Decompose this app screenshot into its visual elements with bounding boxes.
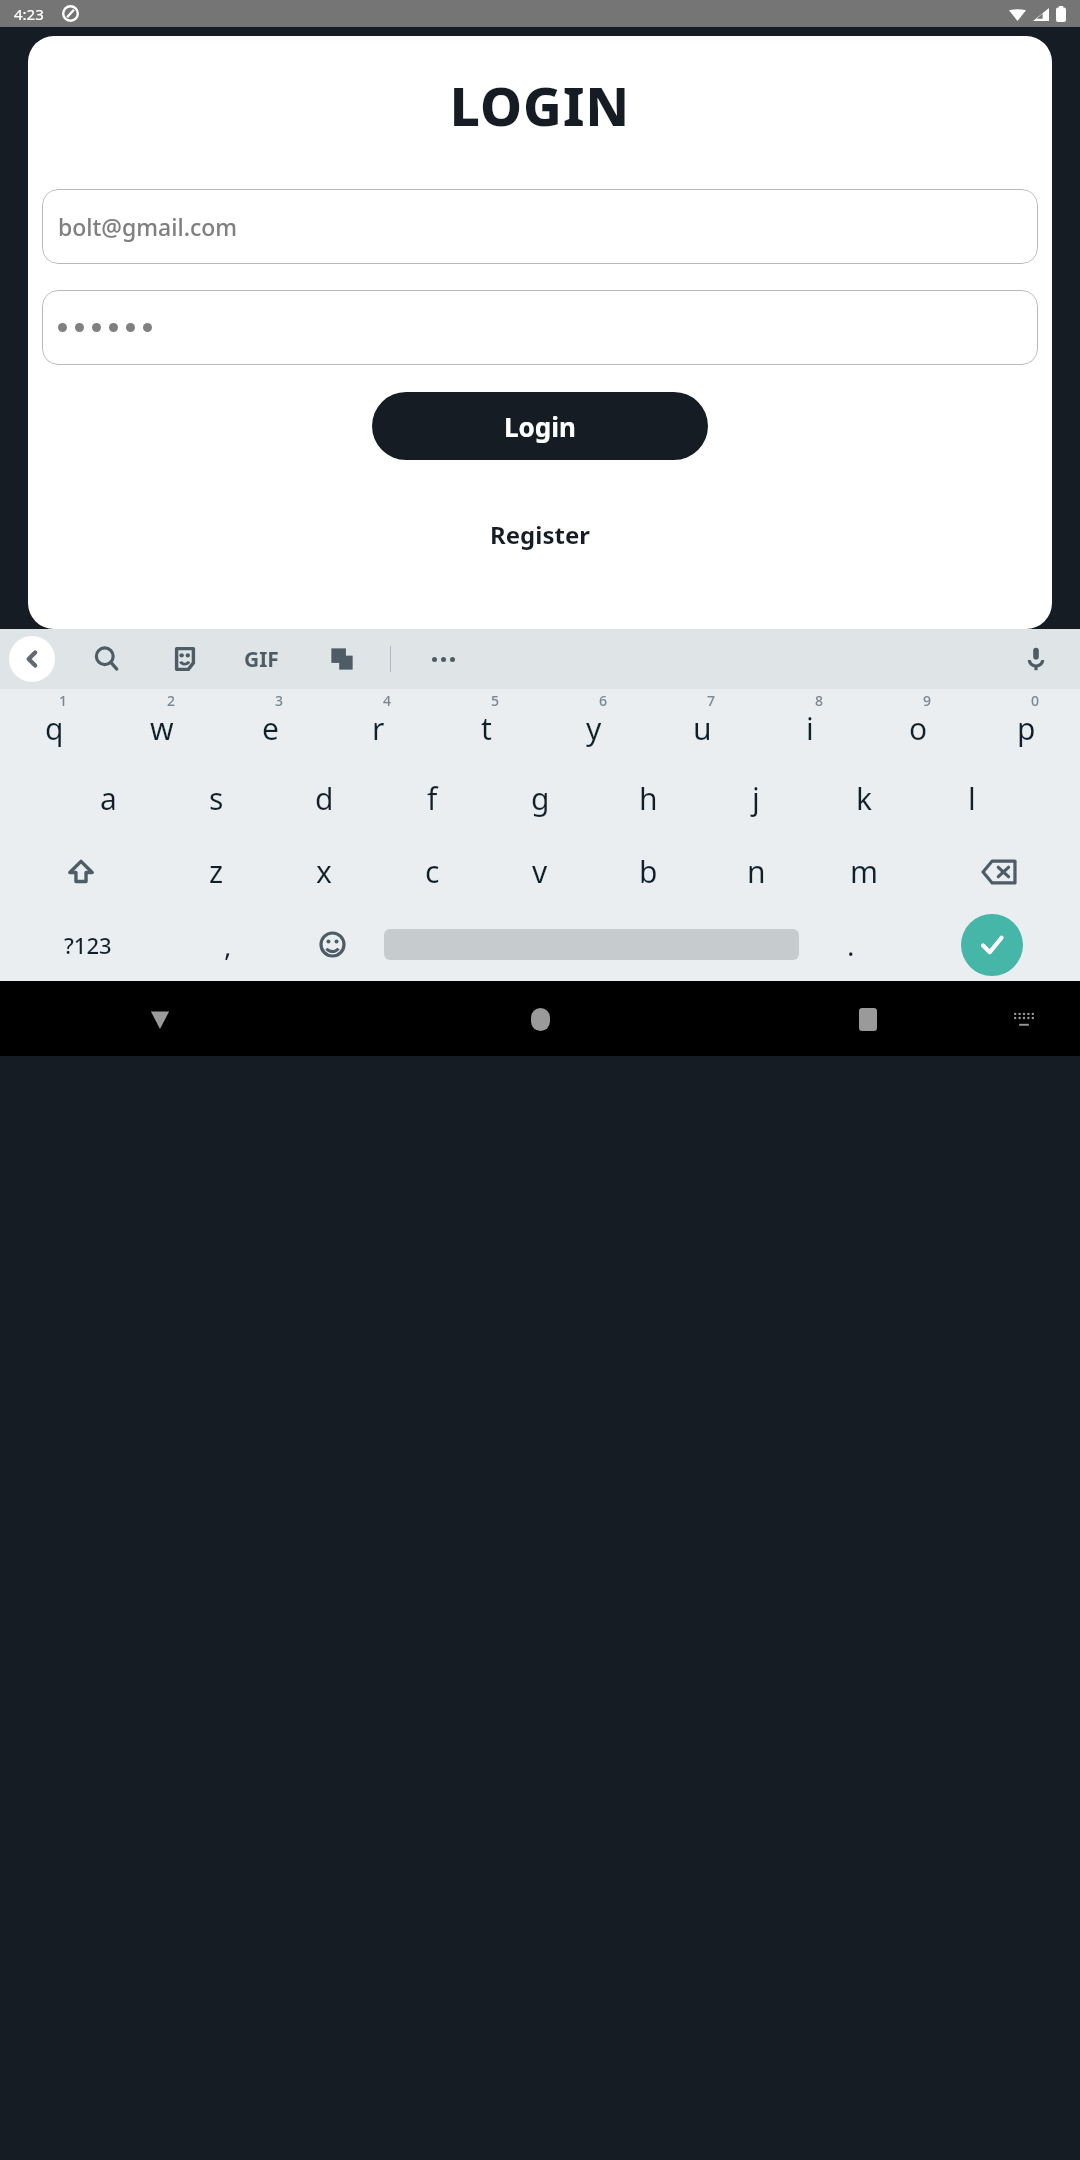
button[interactable]: Login <box>372 392 708 460</box>
button[interactable]: Register <box>470 510 610 559</box>
staticText: 5 <box>491 691 500 710</box>
staticText: Login <box>504 409 576 444</box>
staticText: k <box>856 778 873 819</box>
button[interactable]: c <box>378 835 486 908</box>
staticText: 0 <box>1031 691 1040 710</box>
button[interactable]: Stickers <box>163 637 207 681</box>
button[interactable]: Voice input <box>1014 637 1058 681</box>
staticText: w <box>150 708 174 749</box>
button[interactable]: ?123 <box>0 908 176 981</box>
staticText: 7 <box>707 691 716 710</box>
staticText: 4 <box>383 691 392 710</box>
button[interactable]: 1 <box>0 689 108 762</box>
button[interactable]: 7 <box>648 689 756 762</box>
button[interactable] <box>42 290 1038 365</box>
button[interactable]: 3 <box>216 689 324 762</box>
staticText: u <box>693 708 712 749</box>
button[interactable]: 9 <box>864 689 972 762</box>
staticText: r <box>372 708 385 749</box>
staticText: z <box>209 851 224 892</box>
button[interactable]: b <box>594 835 702 908</box>
button[interactable]: v <box>486 835 594 908</box>
button[interactable]: 6 <box>540 689 648 762</box>
button[interactable]: g <box>486 762 594 835</box>
button[interactable]: a <box>54 762 162 835</box>
staticText: 6 <box>599 691 608 710</box>
button[interactable]: Shift <box>0 835 162 908</box>
button[interactable]: . <box>799 908 903 981</box>
staticText: q <box>45 708 64 749</box>
staticText: i <box>806 708 814 749</box>
button[interactable]: Back <box>140 999 180 1039</box>
staticText: c <box>425 851 440 892</box>
staticText: 8 <box>815 691 824 710</box>
button[interactable]: Home <box>520 999 560 1039</box>
button[interactable]: 8 <box>756 689 864 762</box>
button[interactable]: Emoji <box>280 908 384 981</box>
staticText: g <box>531 778 550 819</box>
button[interactable]: Backspace <box>918 835 1080 908</box>
staticText: , <box>224 926 232 964</box>
button[interactable]: l <box>918 762 1026 835</box>
button[interactable]: , <box>176 908 280 981</box>
staticText: Register <box>490 518 590 551</box>
staticText: 1 <box>59 691 68 710</box>
staticText: 4:23 <box>14 4 44 24</box>
button[interactable]: More <box>424 649 463 670</box>
button[interactable]: m <box>810 835 918 908</box>
button[interactable]: h <box>594 762 702 835</box>
staticText: y <box>586 708 602 749</box>
staticText: j <box>752 778 760 819</box>
button[interactable]: d <box>270 762 378 835</box>
staticText: LOGIN <box>28 69 1052 141</box>
button[interactable]: f <box>378 762 486 835</box>
button[interactable]: j <box>702 762 810 835</box>
button[interactable]: Recents <box>848 999 888 1039</box>
button[interactable]: 4 <box>324 689 432 762</box>
button[interactable]: bolt@gmail.com <box>42 189 1038 264</box>
button[interactable]: x <box>270 835 378 908</box>
button[interactable]: n <box>702 835 810 908</box>
button[interactable]: GIF <box>238 639 285 680</box>
staticText: 9 <box>923 691 932 710</box>
staticText: 2 <box>167 691 176 710</box>
button[interactable]: z <box>162 835 270 908</box>
button[interactable]: Translate <box>320 637 364 681</box>
button[interactable]: Enter <box>961 914 1023 976</box>
staticText: f <box>427 778 438 819</box>
button[interactable]: k <box>810 762 918 835</box>
staticText: b <box>639 851 658 892</box>
button[interactable]: 2 <box>108 689 216 762</box>
staticText: ?123 <box>64 930 112 960</box>
staticText: o <box>909 708 928 749</box>
staticText: 3 <box>275 691 284 710</box>
staticText: e <box>262 708 279 749</box>
button[interactable]: Back <box>9 636 55 682</box>
staticText: l <box>968 778 976 819</box>
button[interactable]: Switch keyboard <box>1004 999 1044 1039</box>
button[interactable]: Search <box>85 637 129 681</box>
staticText: . <box>847 926 855 964</box>
button[interactable]: 0 <box>972 689 1080 762</box>
staticText: p <box>1017 708 1036 749</box>
staticText: x <box>316 851 332 892</box>
staticText: GIF <box>244 645 279 674</box>
staticText: a <box>100 778 117 819</box>
button[interactable]: 5 <box>432 689 540 762</box>
staticText: s <box>209 778 224 819</box>
button[interactable]: s <box>162 762 270 835</box>
staticText: h <box>639 778 658 819</box>
staticText: bolt@gmail.com <box>58 211 238 242</box>
staticText: v <box>532 851 548 892</box>
staticText: t <box>481 708 492 749</box>
staticText: d <box>315 778 334 819</box>
staticText: n <box>747 851 766 892</box>
staticText: m <box>850 851 879 892</box>
